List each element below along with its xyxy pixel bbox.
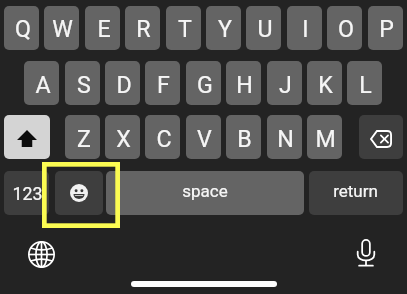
- button[interactable]: A: [24, 61, 59, 105]
- staticText: N: [277, 125, 294, 152]
- button[interactable]: P: [368, 6, 403, 50]
- button[interactable]: 123: [4, 171, 49, 215]
- staticText: M: [315, 125, 336, 152]
- staticText: R: [136, 15, 151, 42]
- button[interactable]: Z: [65, 115, 100, 159]
- button[interactable]: Backspace: [359, 115, 403, 159]
- staticText: E: [97, 15, 111, 42]
- button[interactable]: Shift: [4, 115, 50, 159]
- button[interactable]: Change keyboard: [28, 241, 55, 268]
- staticText: H: [236, 71, 253, 98]
- button[interactable]: Y: [206, 6, 241, 50]
- button[interactable]: I: [287, 6, 322, 50]
- staticText: V: [197, 125, 212, 152]
- staticText: I: [302, 15, 309, 42]
- staticText: O: [338, 15, 354, 42]
- staticText: space: [182, 181, 228, 201]
- staticText: Z: [77, 125, 91, 152]
- staticText: return: [333, 181, 378, 201]
- staticText: T: [178, 15, 192, 42]
- button[interactable]: B: [226, 115, 261, 159]
- staticText: G: [197, 71, 213, 98]
- staticText: J: [279, 71, 292, 98]
- staticText: L: [359, 71, 372, 98]
- staticText: 123: [12, 183, 43, 204]
- button[interactable]: T: [166, 6, 201, 50]
- staticText: K: [318, 71, 333, 98]
- button[interactable]: O: [327, 6, 362, 50]
- button[interactable]: N: [267, 115, 302, 159]
- button[interactable]: space: [106, 171, 304, 215]
- staticText: U: [257, 15, 273, 42]
- button[interactable]: L: [347, 61, 382, 105]
- staticText: B: [237, 125, 252, 152]
- button[interactable]: C: [145, 115, 180, 159]
- button[interactable]: S: [65, 61, 100, 105]
- staticText: Y: [218, 15, 232, 42]
- button[interactable]: Dictation: [356, 239, 376, 267]
- staticText: F: [157, 71, 170, 98]
- button[interactable]: U: [246, 6, 281, 50]
- button[interactable]: H: [226, 61, 261, 105]
- button[interactable]: M: [307, 115, 342, 159]
- button[interactable]: Emoji: [55, 171, 103, 215]
- button[interactable]: Q: [4, 6, 39, 50]
- button[interactable]: G: [186, 61, 221, 105]
- button[interactable]: W: [44, 6, 79, 50]
- button[interactable]: K: [307, 61, 342, 105]
- button[interactable]: return: [309, 171, 403, 215]
- staticText: W: [52, 15, 73, 42]
- staticText: D: [116, 71, 132, 98]
- staticText: C: [156, 125, 172, 152]
- staticText: S: [77, 71, 91, 98]
- staticText: A: [35, 71, 51, 98]
- button[interactable]: X: [105, 115, 140, 159]
- button[interactable]: F: [145, 61, 180, 105]
- button[interactable]: R: [125, 6, 160, 50]
- button[interactable]: J: [267, 61, 302, 105]
- button[interactable]: V: [186, 115, 221, 159]
- staticText: Q: [15, 15, 31, 42]
- staticText: X: [116, 125, 131, 152]
- button[interactable]: E: [85, 6, 120, 50]
- button[interactable]: D: [105, 61, 140, 105]
- staticText: P: [379, 15, 394, 42]
